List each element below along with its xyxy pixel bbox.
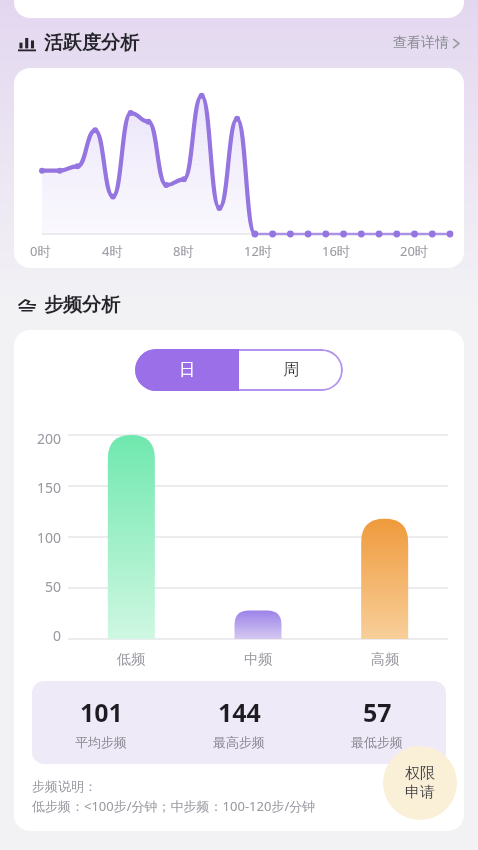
staticText: 步频分析 [44,293,120,317]
staticText: 16时 [322,242,350,260]
staticText: 权限 [405,764,435,783]
staticText: 144 [218,695,261,729]
staticText: 最低步频 [351,734,403,750]
staticText: 12时 [244,242,272,260]
button[interactable]: 144 [170,695,308,750]
staticText: 高频 [371,651,399,669]
button[interactable]: 查看详情 [391,30,462,56]
staticText: 平均步频 [75,734,127,750]
button[interactable]: 57 [308,695,446,750]
staticText: 50 [45,577,62,596]
staticText: 8时 [173,242,194,260]
staticText: 查看详情 [393,34,449,52]
staticText: 日 [179,360,195,380]
staticText: 100 [37,528,62,547]
staticText: 周 [283,360,299,380]
button[interactable]: 日 [135,349,239,391]
button[interactable]: 权限申请 [383,746,457,820]
staticText: 57 [363,695,392,729]
button[interactable]: 周 [239,349,343,391]
staticText: 101 [80,695,123,729]
staticText: 150 [37,478,62,497]
staticText: 低频 [117,651,145,669]
staticText: 20时 [400,242,428,260]
staticText: 最高步频 [213,734,265,750]
staticText: 步频说明： [32,778,97,794]
staticText: 申请 [405,783,435,802]
staticText: 活跃度分析 [44,31,139,55]
button[interactable]: 101 [32,695,170,750]
staticText: 0 [53,626,62,645]
staticText: 0时 [30,242,51,260]
staticText: 200 [37,429,62,448]
staticText: 低步频：<100步/分钟；中步频：100-120步/分钟 [32,797,316,815]
staticText: 中频 [244,651,272,669]
staticText: 4时 [102,242,123,260]
